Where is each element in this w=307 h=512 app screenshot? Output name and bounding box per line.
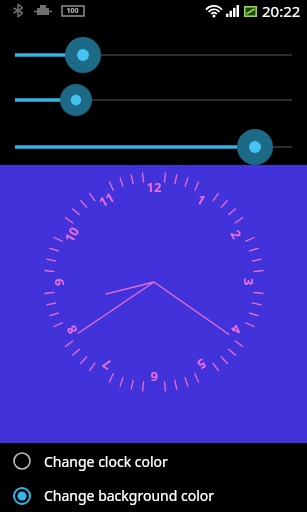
button[interactable]: Change background color	[0, 478, 307, 512]
button[interactable]: Change clock color	[0, 444, 307, 478]
staticText: 20:22	[262, 1, 301, 21]
button[interactable]: Red color slider	[0, 44, 307, 66]
button[interactable]: Blue color slider	[0, 136, 307, 158]
button[interactable]: Green color slider	[0, 89, 307, 111]
staticText: Change clock color	[44, 452, 168, 471]
staticText: Change background color	[44, 486, 215, 505]
